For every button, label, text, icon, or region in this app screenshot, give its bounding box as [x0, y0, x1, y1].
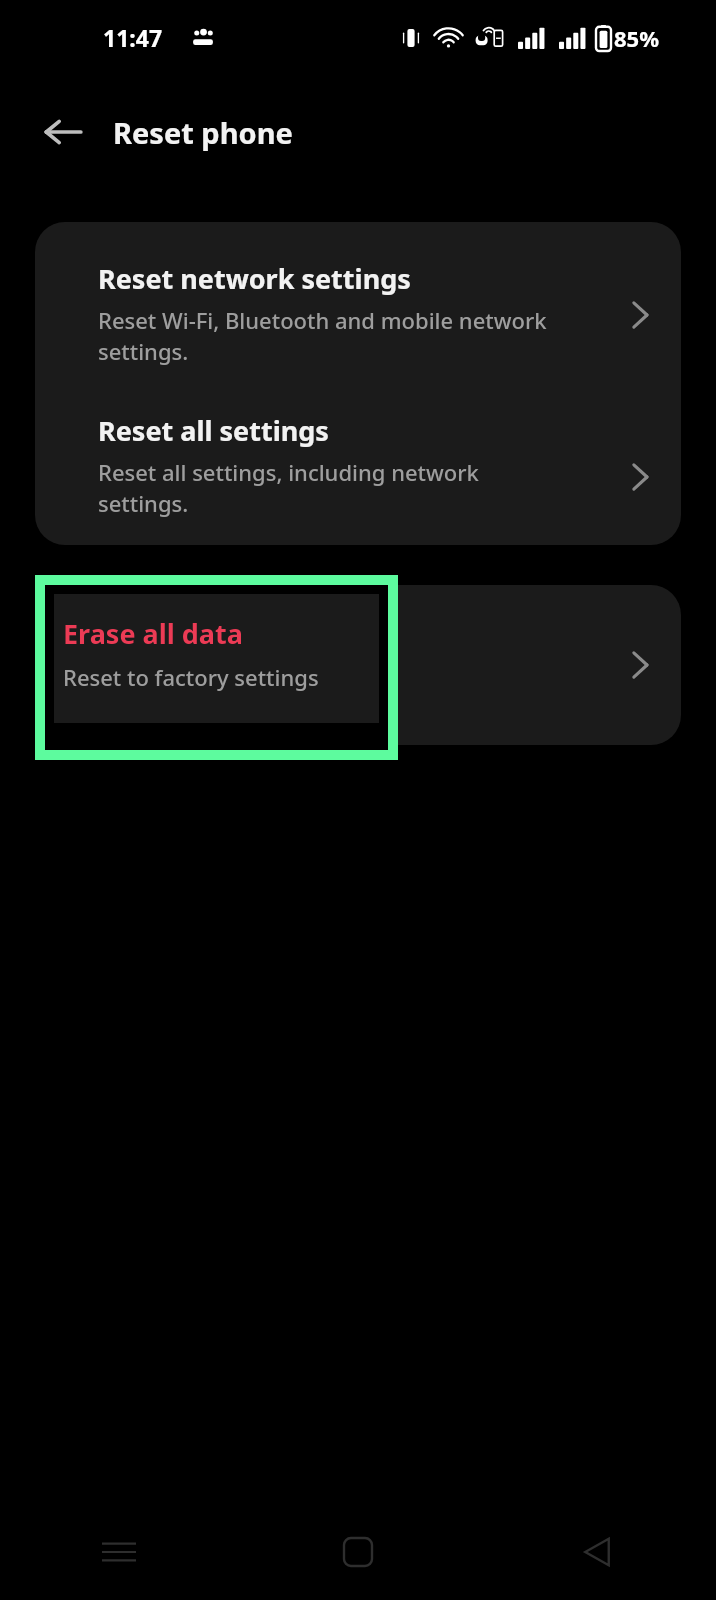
staticText: Reset all settings, including network se…	[98, 457, 561, 519]
button[interactable]: Back	[27, 96, 99, 168]
staticText: Erase all data	[63, 613, 243, 650]
button[interactable]: Reset network settings	[35, 222, 681, 408]
staticText: 11:47	[103, 22, 163, 53]
staticText: Reset phone	[113, 113, 293, 152]
staticText: Reset Wi-Fi, Bluetooth and mobile networ…	[98, 305, 561, 367]
button[interactable]: Recent apps	[0, 1504, 238, 1600]
button[interactable]: Home	[238, 1504, 477, 1600]
button[interactable]: Back	[477, 1504, 716, 1600]
button[interactable]: Erase all data	[35, 585, 681, 745]
staticText: Reset to factory settings	[63, 662, 319, 692]
button[interactable]: Erase all data	[63, 615, 243, 652]
staticText: Reset network settings	[98, 260, 411, 297]
staticText: 85%	[614, 23, 660, 53]
button[interactable]: Reset all settings	[35, 408, 681, 545]
staticText: Reset all settings	[98, 412, 329, 449]
staticText: Reset to factory settings	[63, 660, 319, 690]
